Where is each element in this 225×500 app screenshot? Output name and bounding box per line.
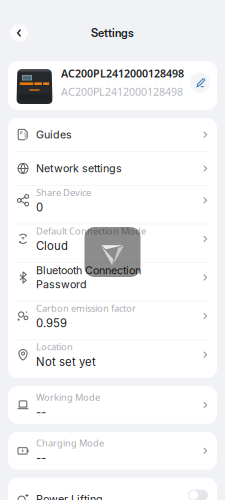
staticText: Password	[36, 278, 87, 291]
staticText: AC200PL2412000128498	[61, 84, 183, 99]
staticText: Carbon emission factor	[36, 302, 136, 314]
button[interactable]: Default Connection Mode	[8, 224, 217, 262]
staticText: --	[36, 405, 46, 419]
button[interactable]: Charging Mode	[8, 432, 217, 470]
button[interactable]: Working Mode	[8, 386, 217, 424]
staticText: Network settings	[36, 162, 122, 175]
button[interactable]: Carbon emission factor	[8, 302, 217, 339]
button[interactable]: Guides	[8, 118, 217, 151]
staticText: Location	[36, 340, 73, 353]
staticText: AC200PL2412000128498	[61, 66, 184, 80]
button[interactable]: Network settings	[8, 152, 217, 185]
staticText: Charging Mode	[36, 437, 104, 449]
staticText: Working Mode	[36, 391, 100, 403]
staticText: Bluetooth Connection	[36, 264, 141, 277]
staticText: 0	[36, 200, 43, 214]
staticText: --	[36, 451, 46, 465]
staticText: Default Connection Mode	[36, 225, 146, 237]
button[interactable]: Power Lifting toggle	[8, 478, 217, 500]
staticText: Settings	[91, 26, 134, 40]
staticText: Cloud	[36, 239, 68, 253]
staticText: Share Device	[36, 186, 91, 198]
button[interactable]: Location	[8, 340, 217, 378]
staticText: Guides	[36, 128, 72, 141]
button[interactable]: Edit device name	[8, 61, 217, 110]
staticText: Not set yet	[36, 355, 96, 369]
button[interactable]: Bluetooth Connection	[8, 263, 217, 301]
button[interactable]: Share Device	[8, 186, 217, 224]
button[interactable]: Back	[10, 24, 28, 42]
staticText: 0.959	[36, 316, 67, 330]
staticText: Power Lifting	[36, 493, 103, 500]
